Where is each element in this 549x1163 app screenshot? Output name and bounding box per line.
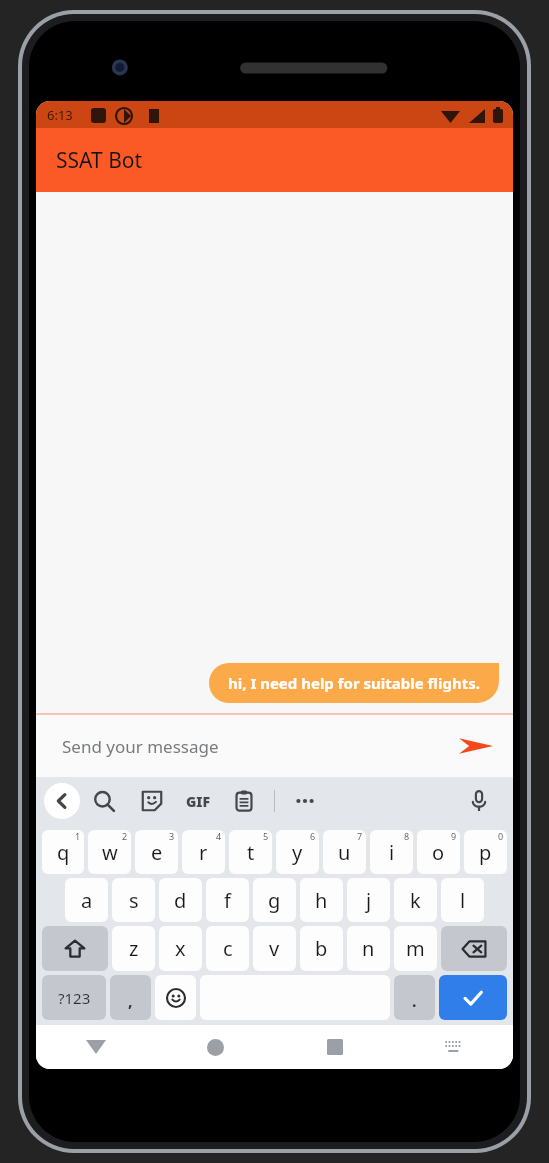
button[interactable]: m [394, 926, 437, 971]
button[interactable]: l [441, 878, 484, 922]
staticText: . [412, 990, 417, 1012]
staticText: b [315, 935, 328, 962]
staticText: , [128, 990, 133, 1012]
staticText: t [247, 839, 255, 866]
button[interactable]: b [300, 926, 343, 971]
button[interactable]: o [417, 830, 460, 874]
button[interactable]: v [253, 926, 296, 971]
staticText: k [410, 887, 421, 914]
button[interactable]: Emoji [155, 975, 196, 1020]
staticText: l [460, 887, 466, 914]
button[interactable]: Switch keyboard [394, 1025, 513, 1069]
staticText: w [102, 839, 118, 866]
button[interactable]: r [182, 830, 225, 874]
staticText: GIF [186, 792, 211, 811]
button[interactable]: More options [281, 777, 329, 825]
staticText: 2 [122, 830, 128, 842]
button[interactable]: Shift [42, 926, 108, 971]
staticText: n [362, 935, 375, 962]
staticText: m [406, 935, 425, 962]
staticText: 7 [357, 830, 363, 842]
button[interactable]: Send [439, 715, 513, 777]
staticText: 0 [498, 830, 504, 842]
button[interactable]: ?123 [42, 975, 106, 1020]
button[interactable]: GIF [176, 779, 220, 823]
staticText: d [174, 887, 187, 914]
staticText: x [175, 935, 186, 962]
button[interactable]: Enter [439, 975, 507, 1020]
button[interactable]: hi, I need help for suitable flights. [209, 663, 499, 703]
staticText: u [338, 839, 351, 866]
button[interactable]: p [464, 830, 507, 874]
staticText: 6 [310, 830, 316, 842]
button[interactable]: w [88, 830, 131, 874]
staticText: ?123 [58, 988, 91, 1008]
button[interactable]: u [323, 830, 366, 874]
button[interactable]: q [42, 830, 84, 874]
button[interactable]: Home [156, 1025, 275, 1069]
button[interactable]: Voice input [455, 777, 503, 825]
staticText: 9 [451, 830, 457, 842]
staticText: a [81, 887, 93, 914]
button[interactable]: x [159, 926, 202, 971]
button[interactable]: g [253, 878, 296, 922]
button[interactable]: Stickers [128, 777, 176, 825]
button[interactable]: e [135, 830, 178, 874]
button[interactable]: h [300, 878, 343, 922]
staticText: c [223, 935, 233, 962]
staticText: r [199, 839, 208, 866]
staticText: z [129, 935, 139, 962]
staticText: j [366, 887, 372, 914]
button[interactable]: Recents [275, 1025, 394, 1069]
staticText: Send your message [62, 735, 219, 758]
staticText: v [269, 935, 280, 962]
staticText: g [268, 887, 281, 914]
button[interactable]: y [276, 830, 319, 874]
staticText: s [129, 887, 139, 914]
staticText: 8 [404, 830, 410, 842]
button[interactable]: , [110, 975, 151, 1020]
staticText: o [432, 839, 445, 866]
button[interactable]: n [347, 926, 390, 971]
button[interactable]: Send your message [36, 715, 439, 777]
staticText: 5 [263, 830, 269, 842]
button[interactable]: Back [44, 783, 80, 819]
button[interactable]: Search [80, 777, 128, 825]
staticText: h [315, 887, 328, 914]
staticText: f [224, 887, 231, 914]
button[interactable]: k [394, 878, 437, 922]
staticText: q [57, 839, 70, 866]
button[interactable]: Backspace [441, 926, 507, 971]
staticText: p [479, 839, 492, 866]
staticText: hi, I need help for suitable flights. [228, 673, 480, 693]
button[interactable]: i [370, 830, 413, 874]
button[interactable]: Clipboard [220, 777, 268, 825]
button[interactable]: . [394, 975, 435, 1020]
button[interactable]: f [206, 878, 249, 922]
staticText: e [151, 839, 163, 866]
button[interactable]: d [159, 878, 202, 922]
staticText: 3 [169, 830, 175, 842]
staticText: SSAT Bot [56, 146, 143, 175]
staticText: y [292, 839, 303, 866]
button[interactable]: c [206, 926, 249, 971]
staticText: 4 [216, 830, 222, 842]
button[interactable]: s [112, 878, 155, 922]
staticText: i [389, 839, 395, 866]
button[interactable]: a [65, 878, 108, 922]
button[interactable]: Back [36, 1025, 156, 1069]
button[interactable]: j [347, 878, 390, 922]
button[interactable]: z [112, 926, 155, 971]
staticText: 1 [75, 830, 81, 842]
button[interactable]: t [229, 830, 272, 874]
staticText: 6:13 [47, 106, 73, 124]
